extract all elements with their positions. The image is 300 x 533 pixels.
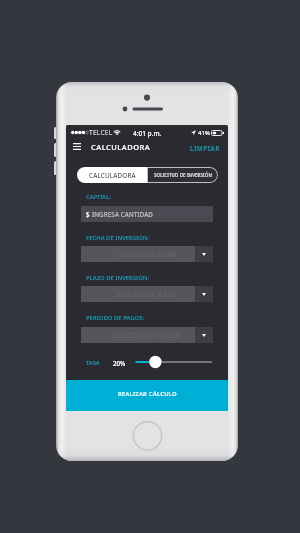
button[interactable]: CALCULADORA bbox=[77, 167, 147, 183]
staticText: TASA bbox=[86, 359, 100, 367]
button[interactable]: SELECCIONA PERIODO bbox=[81, 327, 213, 343]
button[interactable]: LIMPIAR bbox=[190, 140, 220, 157]
staticText: SELECCIONA PERIODO bbox=[113, 331, 181, 339]
staticText: REALIZAR CÁLCULO bbox=[118, 390, 177, 398]
button[interactable]: SELECCIONA PLAZO bbox=[81, 286, 213, 302]
staticText: CAPITAL: bbox=[86, 193, 111, 201]
staticText: 4:01 p.m. bbox=[133, 129, 162, 138]
button[interactable]: $ bbox=[81, 206, 213, 222]
button[interactable]: Tasa slider bbox=[130, 354, 214, 370]
staticText: 20% bbox=[113, 359, 126, 367]
button[interactable]: SOLICITUD DE INVERSIÓN bbox=[147, 167, 218, 183]
staticText: SELECCIONA PLAZO bbox=[117, 290, 177, 298]
button[interactable]: Open navigation menu bbox=[70, 140, 83, 153]
staticText: TELCEL bbox=[89, 128, 113, 137]
staticText: 41% bbox=[198, 129, 210, 137]
staticText: INGRESA CANTIDAD bbox=[92, 210, 153, 218]
button[interactable]: REALIZAR CÁLCULO bbox=[66, 380, 228, 411]
staticText: PERIODO DE PAGOS: bbox=[86, 314, 145, 322]
staticText: SOLICITUD DE INVERSIÓN bbox=[154, 172, 212, 178]
staticText: CALCULADORA bbox=[89, 171, 136, 180]
staticText: FECHA DE INVERSIÓN: bbox=[86, 234, 149, 242]
staticText: SELECCIONA FECHA bbox=[118, 250, 177, 258]
button[interactable]: SELECCIONA FECHA bbox=[81, 246, 213, 262]
staticText: PLAZO DE INVERSIÓN: bbox=[86, 274, 150, 282]
staticText: $ bbox=[86, 210, 90, 218]
staticText: CALCULADORA bbox=[91, 142, 151, 152]
staticText: LIMPIAR bbox=[190, 144, 220, 153]
